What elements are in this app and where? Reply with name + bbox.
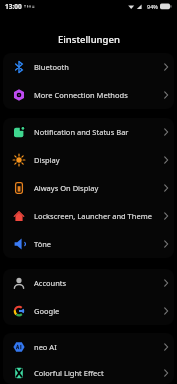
staticText: 94%	[147, 3, 158, 10]
staticText: 13:00	[5, 2, 22, 11]
staticText: Einstellungen	[58, 33, 120, 46]
button[interactable]: neo AI	[3, 333, 174, 361]
button[interactable]: Töne	[3, 230, 174, 258]
staticText: Notification and Status Bar	[34, 127, 129, 137]
staticText: Töne	[34, 239, 52, 249]
staticText: More Connection Methods	[34, 90, 128, 100]
staticText: Bluetooth	[34, 62, 69, 72]
staticText: Colorful Light Effect	[34, 368, 104, 378]
button[interactable]: Bluetooth	[3, 53, 174, 81]
button[interactable]: Accounts	[3, 269, 174, 297]
button[interactable]: Always On Display	[3, 174, 174, 202]
button[interactable]: Lockscreen, Launcher and Theme	[3, 202, 174, 230]
button[interactable]: Colorful Light Effect	[3, 361, 174, 384]
button[interactable]: Notification and Status Bar	[3, 118, 174, 146]
staticText: Display	[34, 155, 60, 165]
button[interactable]: Display	[3, 146, 174, 174]
staticText: Always On Display	[34, 183, 99, 193]
staticText: Accounts	[34, 278, 67, 288]
staticText: Lockscreen, Launcher and Theme	[34, 211, 152, 221]
staticText: neo AI	[34, 342, 57, 352]
staticText: Google	[34, 306, 60, 316]
button[interactable]: More Connection Methods	[3, 81, 174, 109]
button[interactable]: Google	[3, 297, 174, 325]
